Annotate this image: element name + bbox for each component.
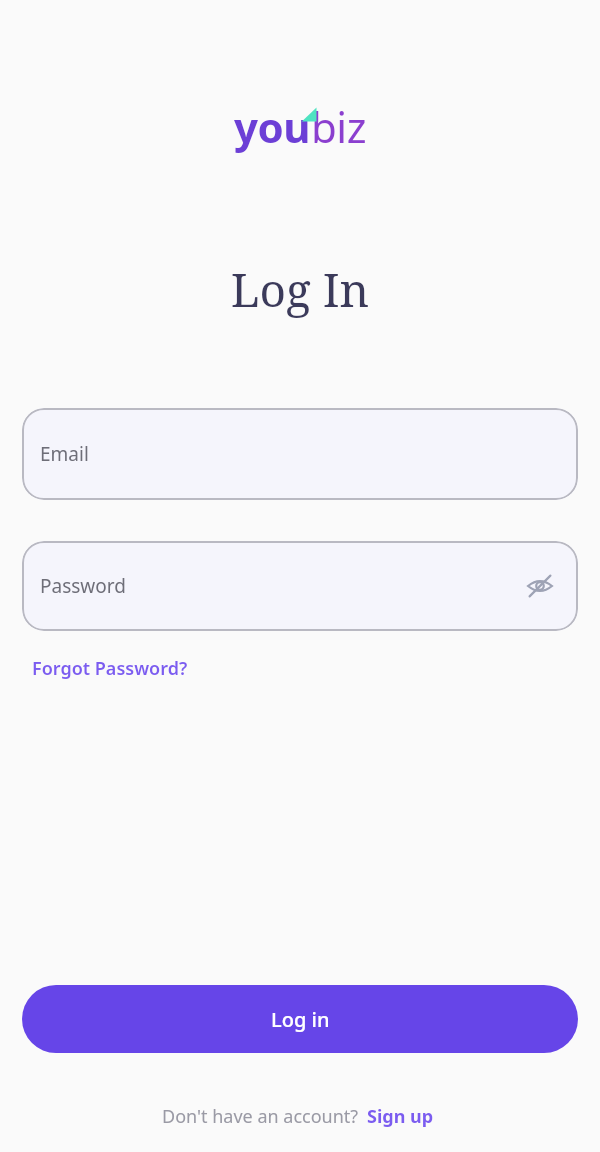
staticText: Email (40, 441, 89, 467)
staticText: you (234, 98, 311, 155)
button[interactable]: Password (22, 541, 578, 631)
staticText: biz (311, 98, 366, 155)
button[interactable]: Log in (22, 985, 578, 1053)
staticText: Forgot Password? (32, 656, 188, 681)
staticText: Log In (0, 258, 600, 321)
button[interactable]: Email (22, 408, 578, 500)
staticText: Log in (271, 1006, 330, 1033)
button[interactable]: Show password (520, 566, 560, 606)
staticText: Sign up (367, 1104, 434, 1129)
staticText: Password (40, 573, 126, 599)
staticText: Don't have an account? (162, 1104, 359, 1129)
button[interactable]: Forgot Password? (23, 650, 197, 687)
button[interactable]: Sign up (359, 1100, 438, 1133)
